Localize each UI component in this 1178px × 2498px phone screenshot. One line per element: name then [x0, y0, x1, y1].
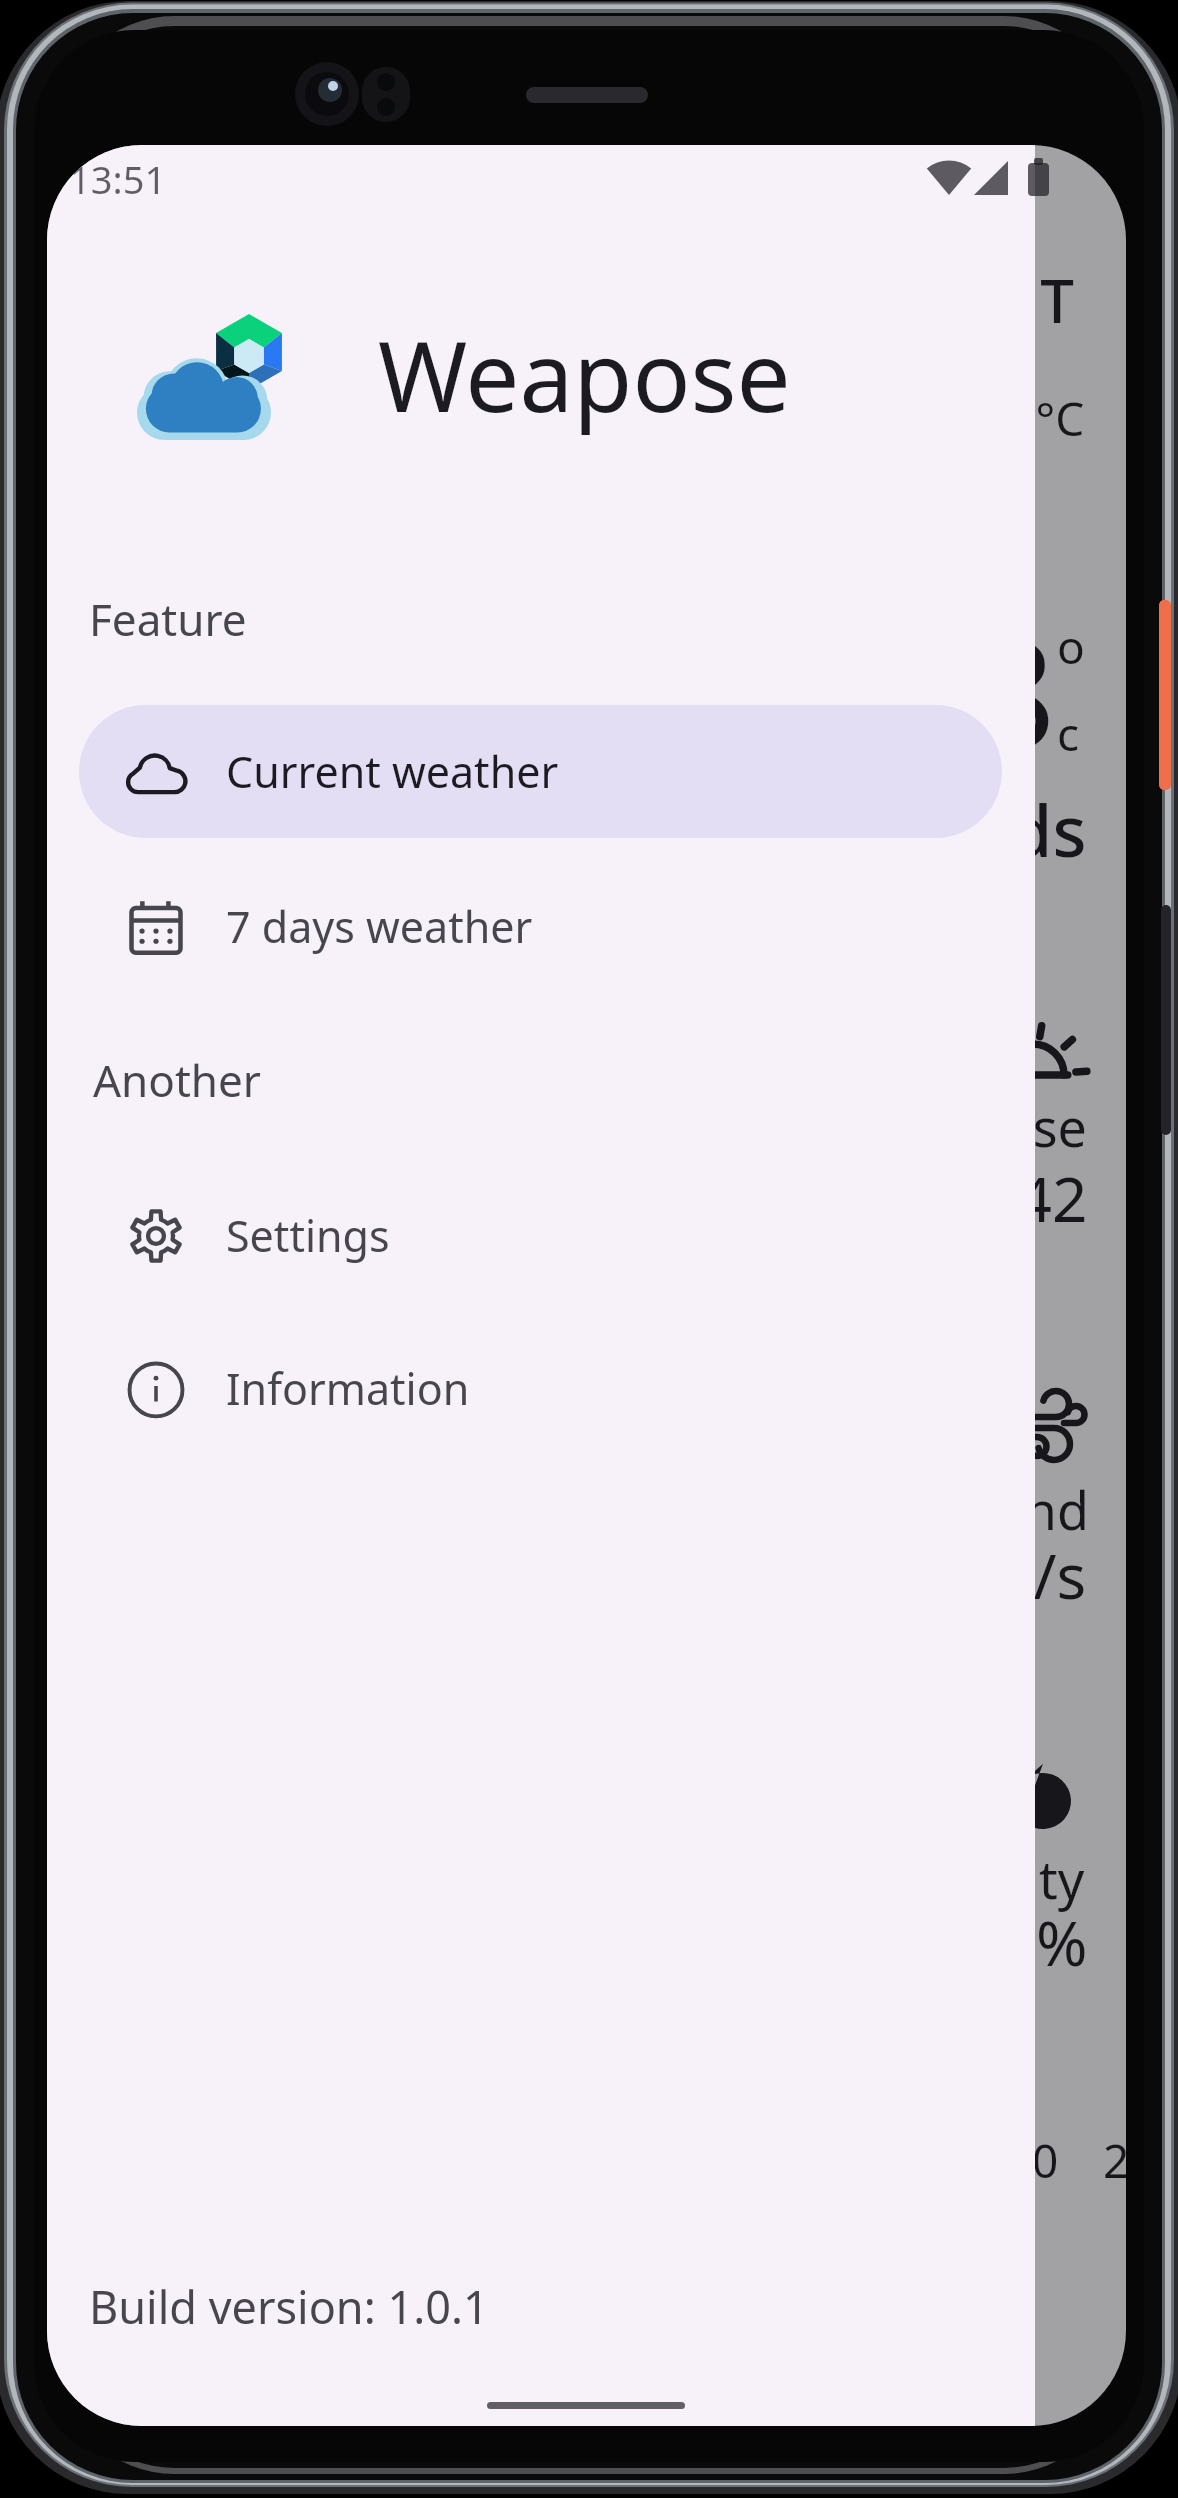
staticText: 0: [1032, 2129, 1059, 2192]
staticText: Current weather: [226, 742, 559, 801]
staticText: Clouds: [859, 782, 1087, 877]
staticText: Sunrise: [905, 1091, 1087, 1162]
staticText: Information: [226, 1359, 470, 1418]
button[interactable]: Current weather: [79, 705, 1002, 838]
button[interactable]: 7 days weather: [79, 860, 1002, 993]
staticText: 06:42: [929, 1156, 1088, 1240]
staticText: CURRENT: [802, 259, 1074, 341]
staticText: Another: [93, 1050, 261, 1110]
staticText: 7 days weather: [226, 897, 533, 956]
staticText: 86 %: [949, 1900, 1088, 1984]
staticText: c: [1057, 702, 1080, 765]
staticText: o: [1057, 615, 1085, 678]
staticText: 3 m/s: [924, 1533, 1087, 1617]
button[interactable]: Information: [79, 1322, 1002, 1455]
staticText: Wind: [963, 1474, 1089, 1545]
staticText: 14°C: [983, 387, 1085, 450]
staticText: 8: [970, 589, 1056, 793]
staticText: Settings: [226, 1206, 390, 1265]
staticText: 2: [1103, 2129, 1126, 2192]
staticText: Feature: [89, 589, 247, 649]
button[interactable]: Settings: [79, 1169, 1002, 1302]
staticText: 13:51: [69, 153, 167, 205]
staticText: Weapose: [378, 309, 791, 440]
staticText: Humidity: [861, 1843, 1085, 1914]
staticText: Build version: 1.0.1: [89, 2276, 489, 2337]
